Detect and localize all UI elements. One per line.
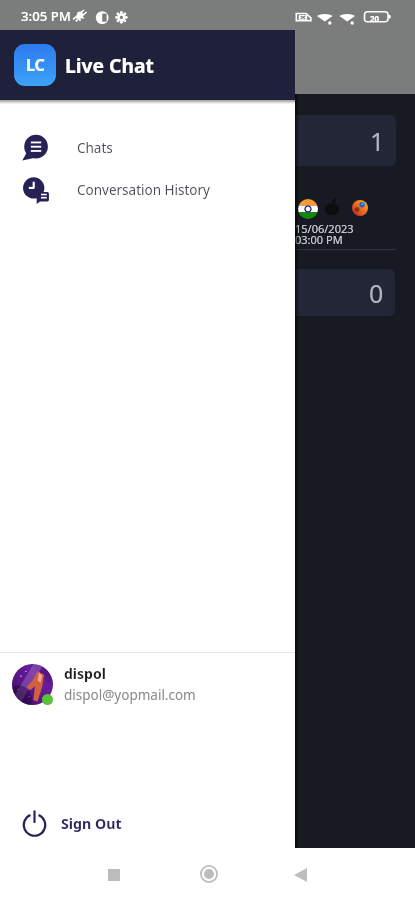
- button[interactable]: Sign Out: [0, 803, 295, 843]
- button[interactable]: Conversation History: [0, 168, 295, 211]
- staticText: Live Chat: [65, 52, 154, 78]
- staticText: Conversation History: [77, 181, 210, 199]
- button[interactable]: dispol: [0, 648, 295, 720]
- staticText: 3:05 PM: [21, 7, 71, 25]
- staticText: 20: [370, 13, 380, 24]
- staticText: 0: [369, 276, 384, 310]
- staticText: 15/06/2023: [295, 221, 354, 236]
- staticText: dispol: [64, 664, 106, 683]
- button[interactable]: Home: [195, 860, 223, 888]
- button[interactable]: Chats: [0, 126, 295, 169]
- staticText: Chats: [77, 139, 113, 157]
- staticText: dispol@yopmail.com: [64, 686, 196, 704]
- button[interactable]: Back: [286, 861, 314, 889]
- staticText: 03:00 PM: [295, 232, 343, 247]
- staticText: Sign Out: [61, 814, 122, 833]
- button[interactable]: Recents: [100, 861, 128, 889]
- staticText: 1: [370, 124, 385, 158]
- staticText: LC: [26, 54, 45, 76]
